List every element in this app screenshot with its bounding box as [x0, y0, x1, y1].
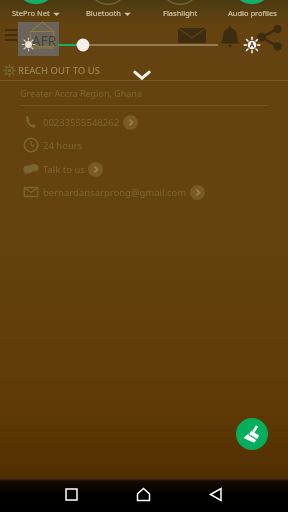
button[interactable]: Back	[202, 480, 231, 509]
staticText: 24 hours	[43, 139, 83, 152]
button[interactable]: Talk to us	[23, 158, 288, 180]
button[interactable]: REACH OUT TO US	[0, 60, 288, 80]
staticText: Flashlight	[163, 8, 198, 18]
button[interactable]: Audio profiles	[216, 0, 288, 20]
button[interactable]: Share	[257, 24, 283, 50]
staticText: AFR	[32, 32, 57, 50]
button[interactable]: Flashlight	[144, 0, 216, 20]
staticText: Talk to us	[43, 163, 85, 176]
staticText: REACH OUT TO US	[18, 64, 100, 77]
staticText: AFRICA REACH FOUNDATION	[33, 47, 74, 55]
staticText: Audio profiles	[228, 8, 277, 18]
button[interactable]: bernardansarprong@gmail.com	[23, 181, 288, 203]
button[interactable]: StePro Net	[0, 0, 72, 20]
button[interactable]: Recents	[57, 480, 86, 509]
button[interactable]: AFR	[18, 22, 59, 56]
button[interactable]: Notifications	[220, 26, 240, 48]
staticText: StePro Net	[12, 8, 50, 18]
button[interactable]: Clean	[236, 418, 268, 450]
button[interactable]: Messages	[178, 28, 206, 43]
staticText: Bluetooth	[86, 8, 121, 18]
button[interactable]: 24 hours	[23, 134, 288, 156]
button[interactable]: Home	[129, 480, 158, 509]
button[interactable]: Bluetooth	[72, 0, 144, 20]
staticText: Greater Accra Region, Ghana	[20, 87, 142, 99]
staticText: 00233555548262	[43, 116, 120, 129]
button[interactable]: Auto brightness	[244, 37, 260, 53]
staticText: bernardansarprong@gmail.com	[43, 186, 187, 199]
button[interactable]: 00233555548262	[23, 111, 288, 133]
button[interactable]: Menu	[2, 26, 20, 44]
